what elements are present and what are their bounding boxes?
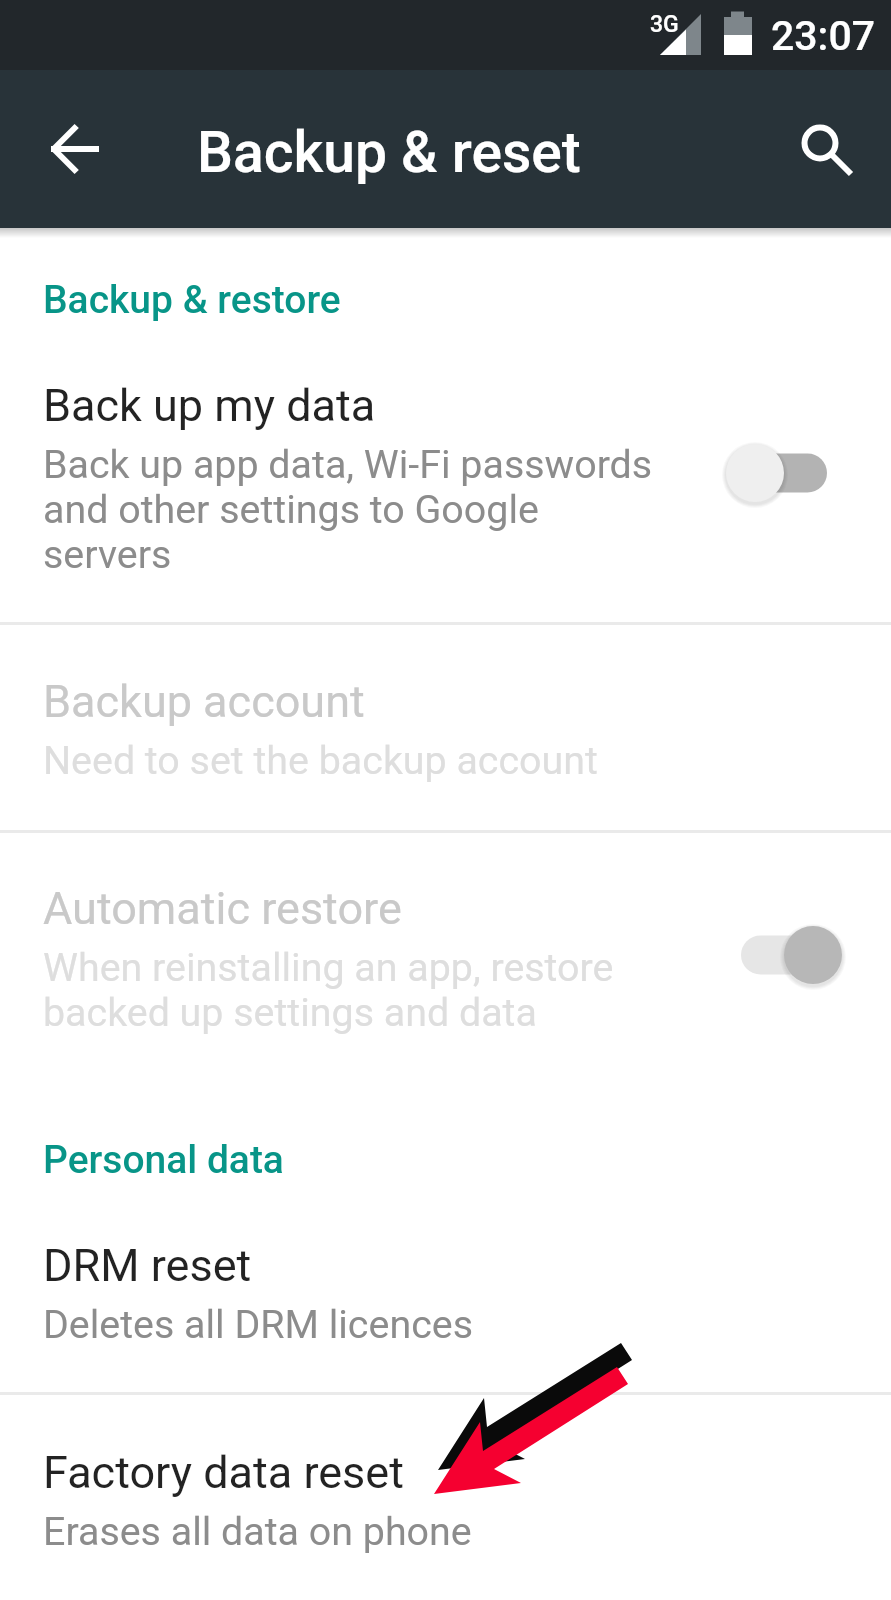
staticText: Factory data reset — [43, 1446, 404, 1499]
button[interactable]: Navigate up — [26, 96, 124, 202]
staticText: Deletes all DRM licences — [43, 1301, 473, 1347]
staticText: 3G — [650, 11, 679, 38]
button[interactable]: Back up my data — [0, 240, 891, 622]
staticText: Back up app data, Wi-Fi passwords and ot… — [43, 441, 653, 577]
staticText: 23:07 — [771, 12, 876, 60]
staticText: Backup & reset — [197, 119, 581, 186]
staticText: Backup account — [43, 675, 365, 728]
button[interactable]: DRM reset — [0, 1190, 891, 1392]
staticText: Personal data — [43, 1137, 284, 1183]
staticText: DRM reset — [43, 1239, 252, 1292]
staticText: Erases all data on phone — [43, 1508, 472, 1554]
staticText: Need to set the backup account — [43, 737, 598, 783]
staticText: When reinstalling an app, restore backed… — [43, 944, 614, 1035]
button[interactable]: Toggle setting — [714, 423, 854, 523]
button[interactable]: Backup account — [0, 625, 891, 830]
staticText: Backup & restore — [43, 277, 341, 323]
button[interactable]: Automatic restore — [0, 833, 891, 1100]
staticText: Automatic restore — [43, 882, 402, 935]
button[interactable]: Search — [778, 96, 874, 202]
button[interactable]: Factory data reset — [0, 1395, 891, 1600]
button[interactable]: Toggle setting — [714, 905, 854, 1005]
staticText: Back up my data — [43, 379, 376, 432]
